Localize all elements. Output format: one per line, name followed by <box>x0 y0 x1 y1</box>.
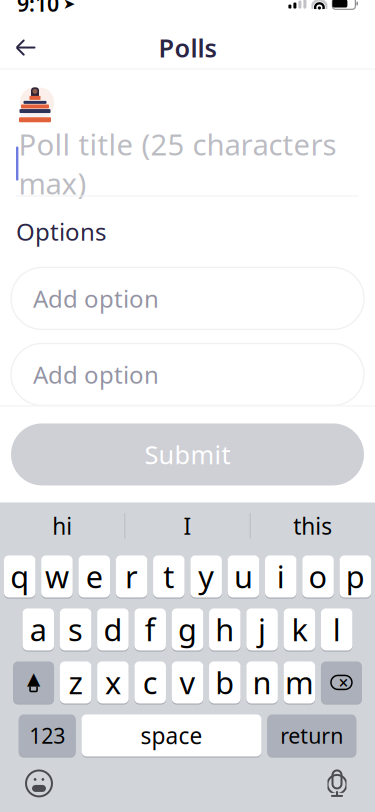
button[interactable]: k <box>284 607 315 651</box>
button[interactable]: this <box>251 504 375 548</box>
staticText: d <box>103 609 122 650</box>
staticText: × <box>338 671 348 694</box>
button[interactable]: r <box>116 554 147 598</box>
staticText: f <box>145 609 156 650</box>
staticText: c <box>143 662 158 703</box>
staticText: n <box>253 662 272 703</box>
staticText: I <box>183 511 191 541</box>
button[interactable]: l <box>321 607 352 651</box>
staticText: v <box>179 662 195 703</box>
button[interactable]: Shift <box>13 660 54 704</box>
staticText: s <box>68 609 83 650</box>
button[interactable]: o <box>302 554 334 598</box>
button[interactable]: 123 <box>19 713 76 757</box>
staticText: hi <box>52 511 72 541</box>
button[interactable]: q <box>4 554 35 598</box>
button[interactable]: hi <box>0 504 124 548</box>
staticText: y <box>198 556 214 597</box>
button[interactable]: v <box>172 660 203 704</box>
button[interactable]: u <box>228 554 259 598</box>
button[interactable]: y <box>190 554 222 598</box>
staticText: Poll title (25 characters max) <box>18 125 336 202</box>
button[interactable]: g <box>172 607 203 651</box>
button[interactable]: s <box>60 607 91 651</box>
staticText: x <box>105 662 121 703</box>
button[interactable]: Dictation <box>323 767 351 799</box>
staticText: space <box>140 720 202 750</box>
staticText: Polls <box>158 31 216 64</box>
button[interactable]: m <box>284 660 315 704</box>
button[interactable]: t <box>153 554 185 598</box>
staticText: z <box>69 662 83 703</box>
staticText: u <box>234 556 253 597</box>
staticText: b <box>215 662 234 703</box>
staticText: m <box>285 662 314 703</box>
button[interactable]: x <box>97 660 129 704</box>
staticText: j <box>258 609 266 650</box>
staticText: Submit <box>144 438 230 471</box>
button[interactable]: i <box>265 554 296 598</box>
button[interactable]: Back <box>0 26 52 70</box>
button[interactable]: c <box>134 660 166 704</box>
staticText: Add option <box>33 282 159 314</box>
button[interactable]: Add option <box>11 267 364 329</box>
staticText: ▲ <box>27 669 40 688</box>
staticText: ➤ <box>63 0 75 12</box>
button[interactable]: Emoji <box>24 768 54 798</box>
staticText: p <box>346 556 365 597</box>
staticText: g <box>178 609 197 650</box>
staticText: 123 <box>29 721 65 750</box>
button[interactable]: n <box>246 660 278 704</box>
button[interactable]: Add option <box>11 343 364 405</box>
button[interactable]: space <box>81 713 261 757</box>
staticText: 9:10 <box>17 0 59 18</box>
staticText: t <box>163 556 174 597</box>
button[interactable]: p <box>340 554 371 598</box>
button[interactable]: f <box>134 607 166 651</box>
button[interactable]: w <box>41 554 73 598</box>
staticText: Options <box>16 216 106 247</box>
staticText: q <box>10 556 29 597</box>
staticText: l <box>333 609 341 650</box>
staticText: w <box>45 556 69 597</box>
button[interactable]: return <box>267 713 356 757</box>
staticText: k <box>291 609 307 650</box>
button[interactable]: Submit <box>11 423 364 485</box>
staticText: e <box>86 556 103 597</box>
button[interactable]: I <box>125 504 250 548</box>
staticText: h <box>215 609 234 650</box>
button[interactable]: b <box>209 660 241 704</box>
button[interactable]: e <box>78 554 110 598</box>
staticText: return <box>280 721 343 750</box>
staticText: a <box>30 609 47 650</box>
staticText: i <box>277 556 285 597</box>
button[interactable]: Delete <box>321 660 362 704</box>
staticText: o <box>309 556 328 597</box>
staticText: ▲ <box>27 669 40 688</box>
button[interactable]: z <box>60 660 91 704</box>
staticText: r <box>125 556 138 597</box>
button[interactable]: d <box>97 607 129 651</box>
staticText: this <box>293 511 332 541</box>
staticText: Add option <box>33 358 159 390</box>
button[interactable]: j <box>246 607 278 651</box>
button[interactable]: a <box>23 607 54 651</box>
button[interactable]: h <box>209 607 241 651</box>
